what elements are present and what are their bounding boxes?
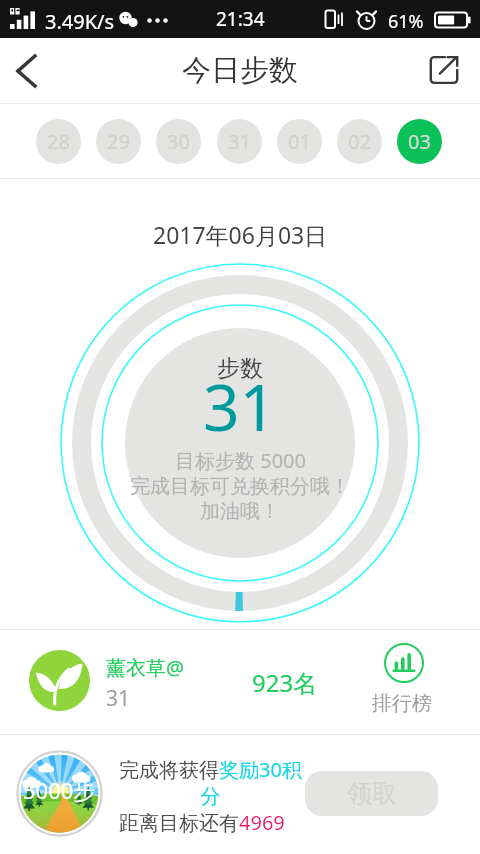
staticText: 加油哦！ [200, 499, 280, 524]
button[interactable]: 30 [156, 119, 201, 164]
staticText: 31 [228, 128, 251, 155]
staticText: 21:34 [216, 6, 265, 32]
staticText: 30 [167, 128, 190, 155]
button[interactable]: 02 [337, 119, 382, 164]
staticText: 今日步数 [182, 52, 298, 89]
staticText: 薰衣草@ [106, 654, 184, 681]
button[interactable]: 28 [36, 119, 81, 164]
button[interactable]: Back [0, 38, 54, 103]
staticText: 28 [47, 128, 70, 155]
staticText: 距离目标还有4969 [119, 809, 285, 836]
button[interactable]: 01 [277, 119, 322, 164]
button[interactable]: Share [424, 38, 480, 103]
button[interactable]: 29 [96, 119, 141, 164]
staticText: 31 [106, 684, 131, 713]
staticText: 目标步数 5000 [175, 447, 306, 474]
staticText: 03 [408, 128, 431, 155]
staticText: 2017年06月03日 [153, 219, 328, 250]
staticText: 3.49K/s [45, 8, 115, 35]
button[interactable]: 领取 [305, 771, 438, 816]
staticText: 29 [107, 128, 130, 155]
staticText: 排行榜 [372, 691, 432, 716]
staticText: 02 [348, 128, 371, 155]
staticText: 31 [203, 363, 277, 450]
button[interactable]: 03 [397, 119, 442, 164]
button[interactable]: 薰衣草@ [0, 630, 480, 734]
button[interactable]: 排行榜 [360, 638, 446, 728]
staticText: 923名 [252, 666, 318, 699]
staticText: 步数 [217, 354, 263, 383]
staticText: 领取 [347, 778, 397, 809]
button[interactable]: 31 [217, 119, 262, 164]
staticText: 01 [288, 128, 311, 155]
staticText: 61% [388, 9, 424, 34]
staticText: 5000步 [23, 775, 96, 805]
staticText: 完成将获得奖励30积分 [119, 756, 302, 809]
staticText: 完成目标可兑换积分哦！ [130, 474, 350, 499]
